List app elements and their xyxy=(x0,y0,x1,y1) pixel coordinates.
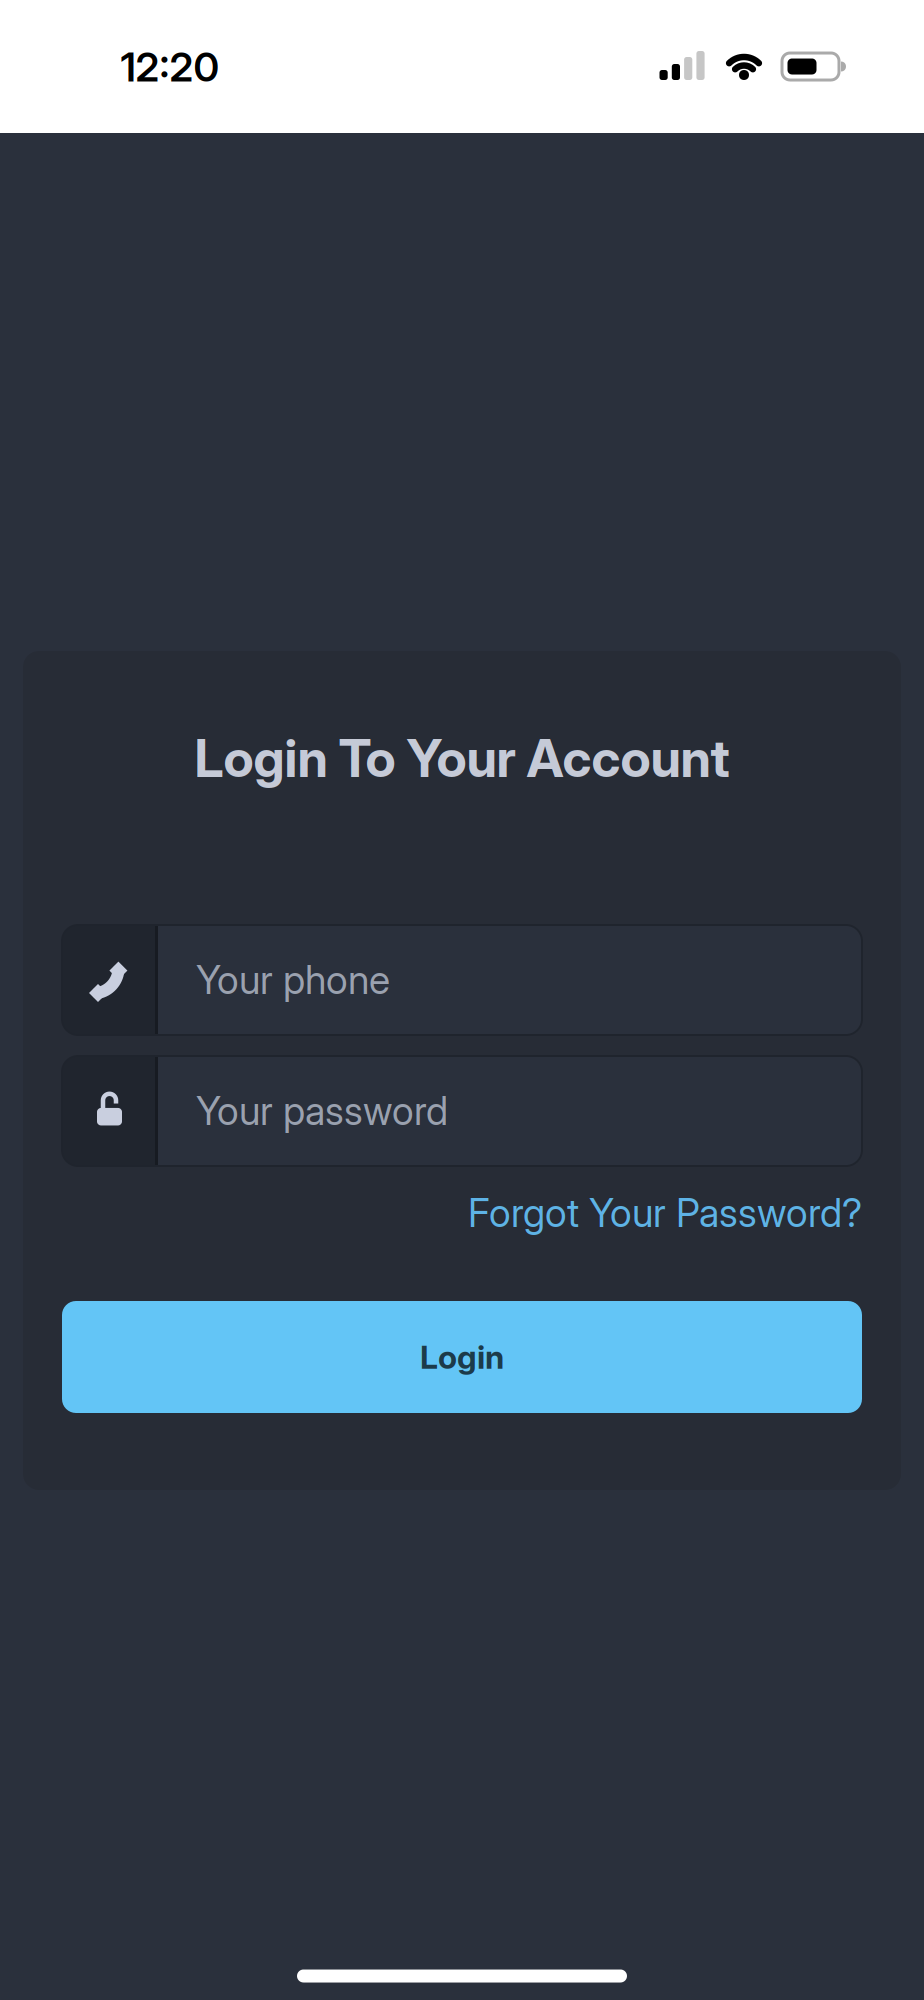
button[interactable]: Login xyxy=(62,1301,862,1413)
staticText: Login To Your Account xyxy=(194,726,729,789)
staticText: Your phone xyxy=(196,957,390,1003)
button[interactable]: Your password xyxy=(62,1056,862,1166)
staticText: Forgot Your Password? xyxy=(468,1190,862,1236)
staticText: Login xyxy=(420,1338,504,1376)
button[interactable]: Forgot Your Password? xyxy=(468,1190,862,1236)
staticText: 12:20 xyxy=(120,43,219,91)
button[interactable]: Your phone xyxy=(62,925,862,1035)
staticText: Your password xyxy=(196,1088,448,1134)
